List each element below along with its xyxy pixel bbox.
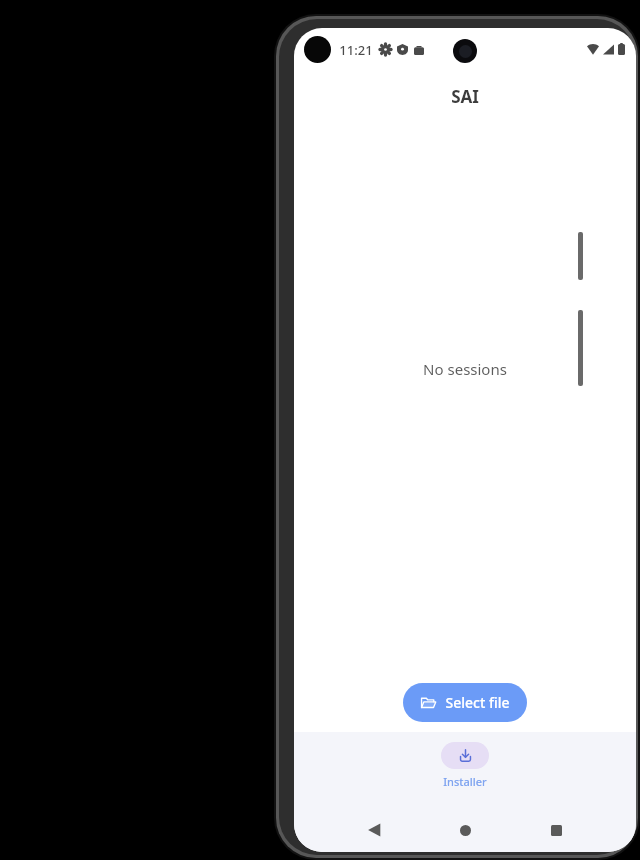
other: Installer [457,747,474,764]
button[interactable]: Back [328,810,420,850]
button[interactable]: Select file [403,683,527,722]
button[interactable]: Installer [435,740,495,791]
staticText: SAI [451,85,479,108]
button[interactable]: Home [420,810,511,850]
staticText: 11:21 [339,41,373,59]
button[interactable]: Recents [511,810,602,850]
staticText: No sessions [423,359,507,379]
staticText: Installer [443,774,487,789]
staticText: Select file [445,693,510,712]
